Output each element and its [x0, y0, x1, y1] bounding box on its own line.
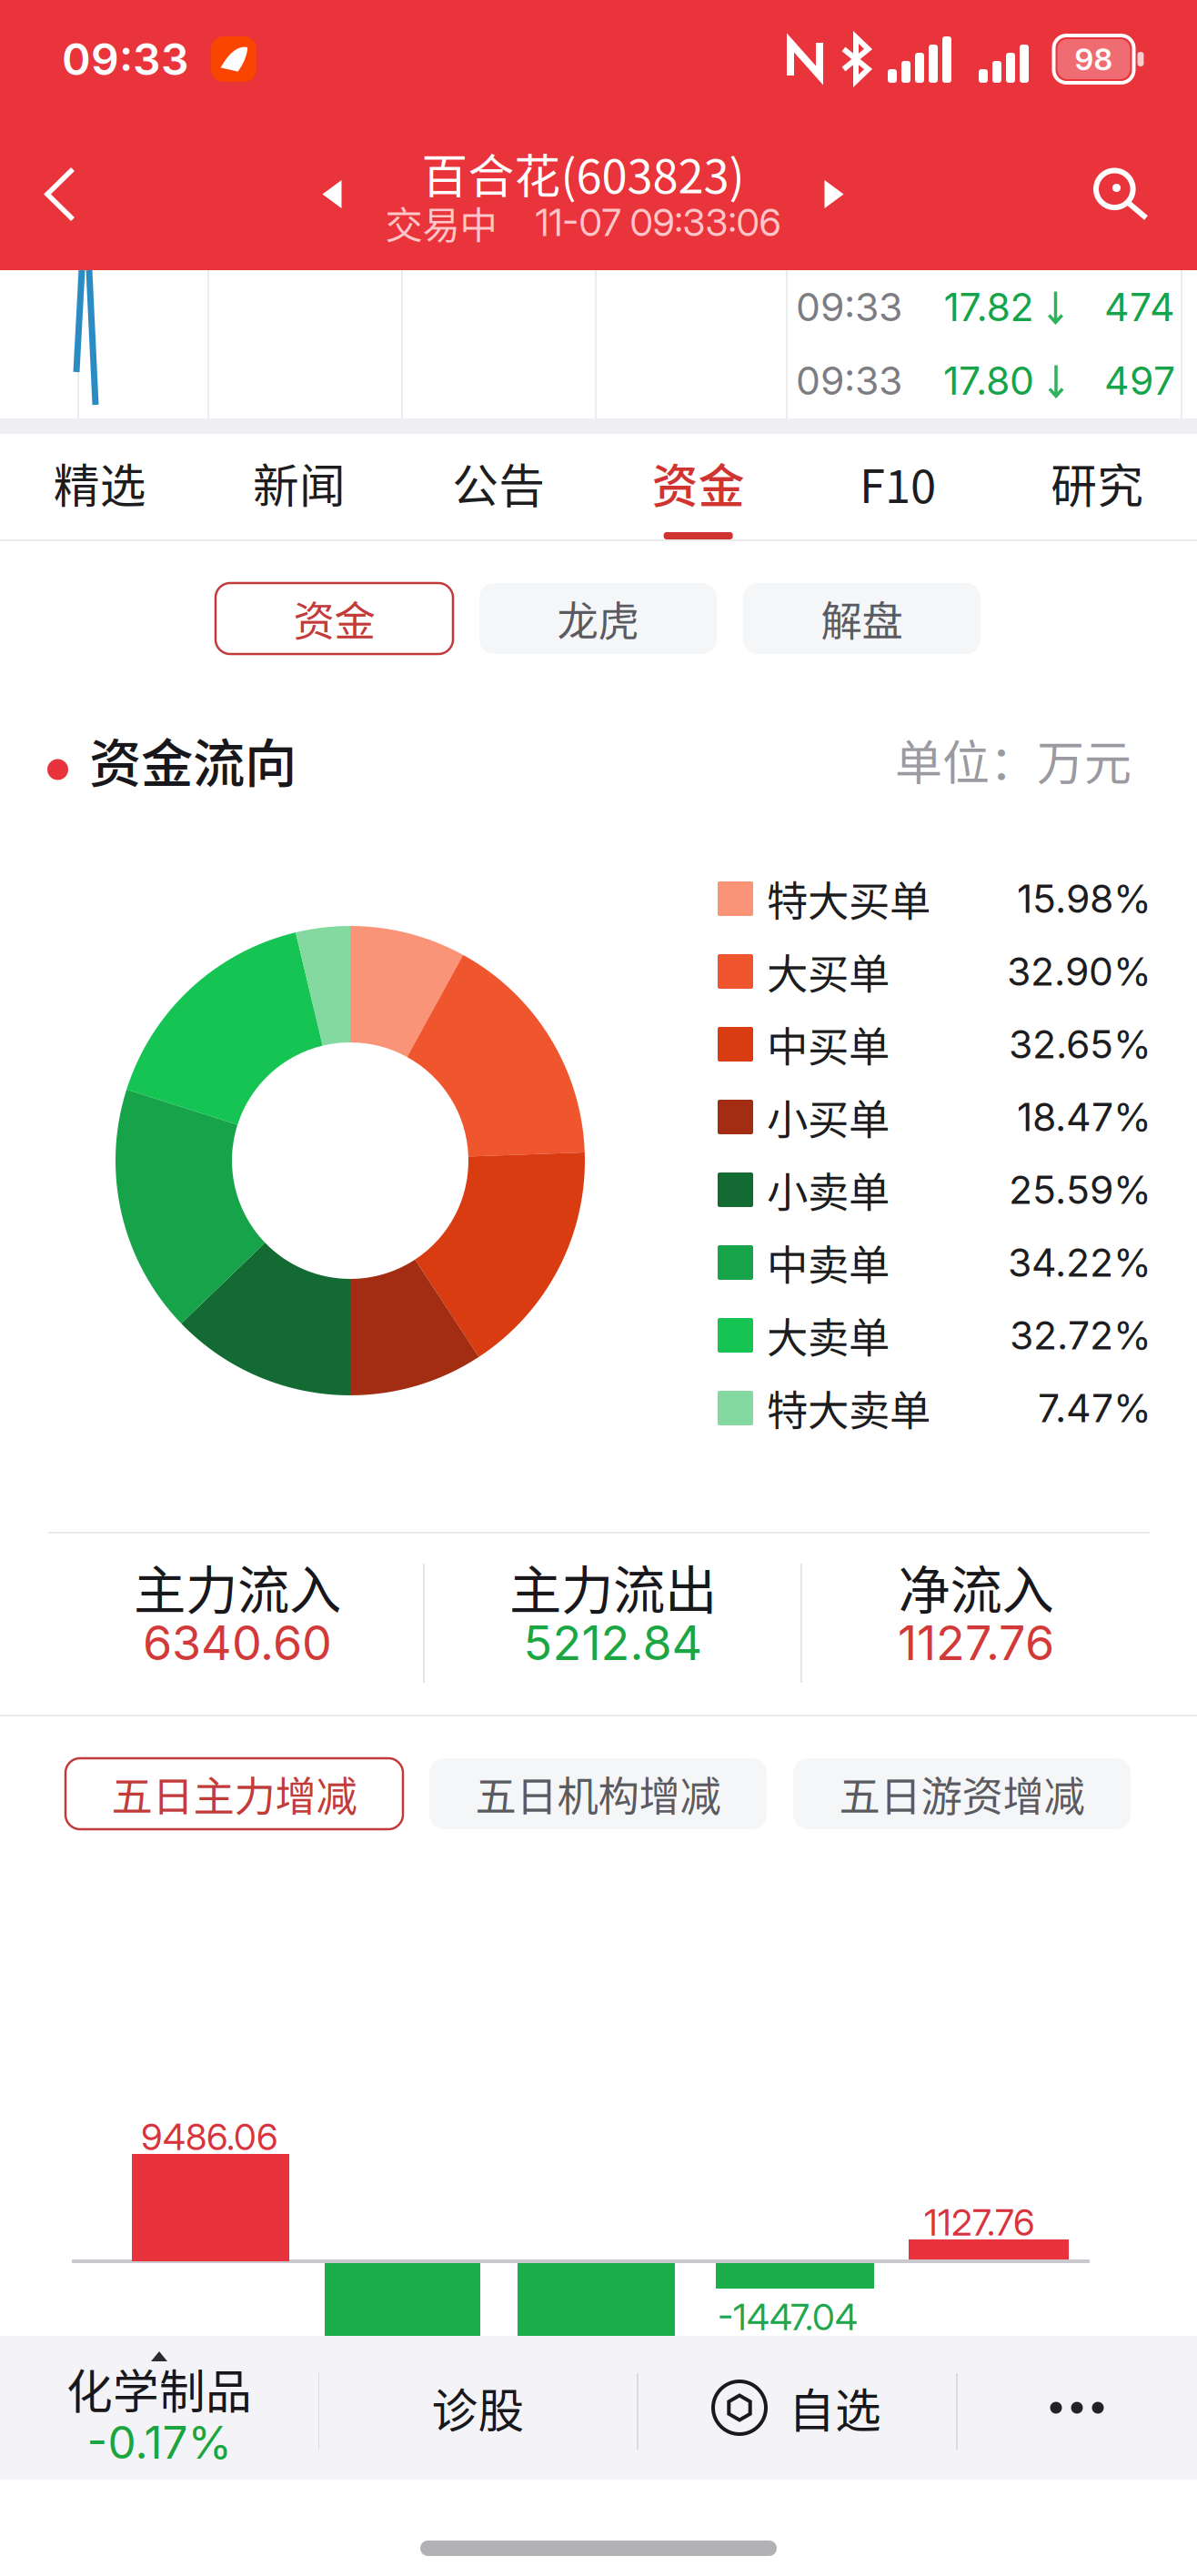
staticText: 497 [1104, 357, 1175, 404]
staticText: 25.59% [1009, 1166, 1152, 1213]
staticText: F10 [860, 450, 936, 516]
staticText: 特大卖单 [767, 1378, 930, 1438]
button[interactable]: Previous stock [295, 118, 369, 270]
staticText: 小买单 [767, 1087, 890, 1147]
button[interactable]: 自选 [638, 2336, 957, 2480]
staticText: 特大买单 [767, 869, 930, 929]
button[interactable]: 化学制品 [0, 2336, 318, 2480]
button[interactable]: 五日游资增减 [793, 1758, 1131, 1829]
staticText: 09:33 [62, 33, 189, 86]
button[interactable]: 资金 [598, 434, 798, 539]
staticText: 公告 [452, 450, 545, 516]
staticText: 34.22% [1008, 1239, 1152, 1286]
staticText: 五日主力增减 [111, 1764, 357, 1824]
staticText: 7.47% [1038, 1385, 1152, 1432]
staticText: -0.17% [87, 2415, 231, 2469]
staticText: 精选 [53, 450, 146, 516]
staticText: 1127.76 [898, 1614, 1054, 1671]
staticText: 32.65% [1009, 1021, 1152, 1068]
button[interactable]: 研究 [998, 434, 1197, 539]
staticText: 11-07 09:33:06 [535, 200, 781, 245]
button[interactable]: 精选 [0, 434, 199, 539]
staticText: 百合花(603823) [422, 140, 744, 207]
staticText: 32.72% [1010, 1312, 1152, 1359]
staticText: 资金 [293, 589, 375, 648]
button[interactable]: 新闻 [199, 434, 399, 539]
staticText: 大卖单 [767, 1305, 890, 1365]
staticText: 交易中 [385, 195, 497, 250]
button[interactable]: 龙虎 [479, 583, 717, 654]
staticText: 解盘 [821, 589, 903, 648]
staticText: 17.82 [944, 284, 1034, 330]
staticText: 净流入 [898, 1549, 1054, 1624]
staticText: 主力流入 [134, 1549, 341, 1624]
staticText: 1127.76 [924, 2200, 1035, 2244]
staticText: 化学制品 [66, 2355, 252, 2422]
button[interactable]: Next stock [797, 118, 871, 270]
button[interactable]: 解盘 [743, 583, 981, 654]
staticText: 18.47% [1017, 1094, 1152, 1140]
button[interactable]: 五日机构增减 [429, 1758, 767, 1829]
staticText: 5212.84 [523, 1614, 703, 1671]
staticText: 资金流向 [89, 722, 297, 797]
staticText: 17.80 [943, 357, 1034, 404]
button[interactable]: 公告 [399, 434, 598, 539]
staticText: 资金 [652, 450, 745, 516]
button[interactable]: Back [0, 118, 109, 270]
staticText: 研究 [1051, 450, 1144, 516]
staticText: 32.90% [1007, 948, 1152, 995]
staticText: 五日机构增减 [475, 1764, 721, 1824]
staticText: 龙虎 [557, 589, 639, 648]
staticText: 中买单 [767, 1014, 890, 1074]
staticText: 474 [1104, 284, 1175, 330]
staticText: 五日游资增减 [839, 1764, 1085, 1824]
button[interactable]: More [957, 2336, 1197, 2480]
button[interactable]: Search [1057, 118, 1197, 270]
button[interactable]: 五日主力增减 [65, 1758, 403, 1829]
staticText: 98 [1075, 41, 1113, 77]
staticText: 09:33 [796, 284, 902, 330]
staticText: 主力流出 [509, 1549, 717, 1624]
staticText: -1447.04 [718, 2295, 858, 2339]
button[interactable]: 诊股 [318, 2336, 638, 2480]
staticText: 中卖单 [767, 1233, 890, 1292]
staticText: 09:33 [796, 357, 902, 404]
staticText: 小卖单 [767, 1160, 890, 1220]
staticText: 大买单 [767, 942, 890, 1001]
staticText: 6340.60 [143, 1614, 332, 1671]
staticText: 诊股 [432, 2374, 524, 2441]
staticText: 9486.06 [141, 2115, 278, 2159]
staticText: 15.98% [1017, 875, 1152, 922]
staticText: 新闻 [253, 450, 346, 516]
staticText: 单位：万元 [895, 725, 1132, 794]
button[interactable]: F10 [798, 434, 997, 539]
staticText: 自选 [789, 2374, 881, 2441]
button[interactable]: 资金 [216, 583, 453, 654]
